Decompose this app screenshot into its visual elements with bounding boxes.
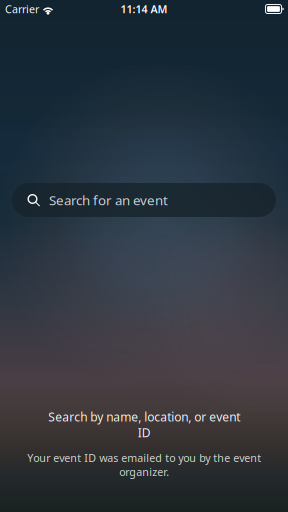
button[interactable]: Search for an event <box>12 183 276 217</box>
staticText: 11:14 AM <box>120 2 167 16</box>
staticText: Your event ID was emailed to you by the … <box>27 451 261 479</box>
staticText: Search by name, location, or event ID <box>48 409 240 441</box>
staticText: Carrier <box>5 2 39 16</box>
staticText: Search for an event <box>49 191 168 209</box>
